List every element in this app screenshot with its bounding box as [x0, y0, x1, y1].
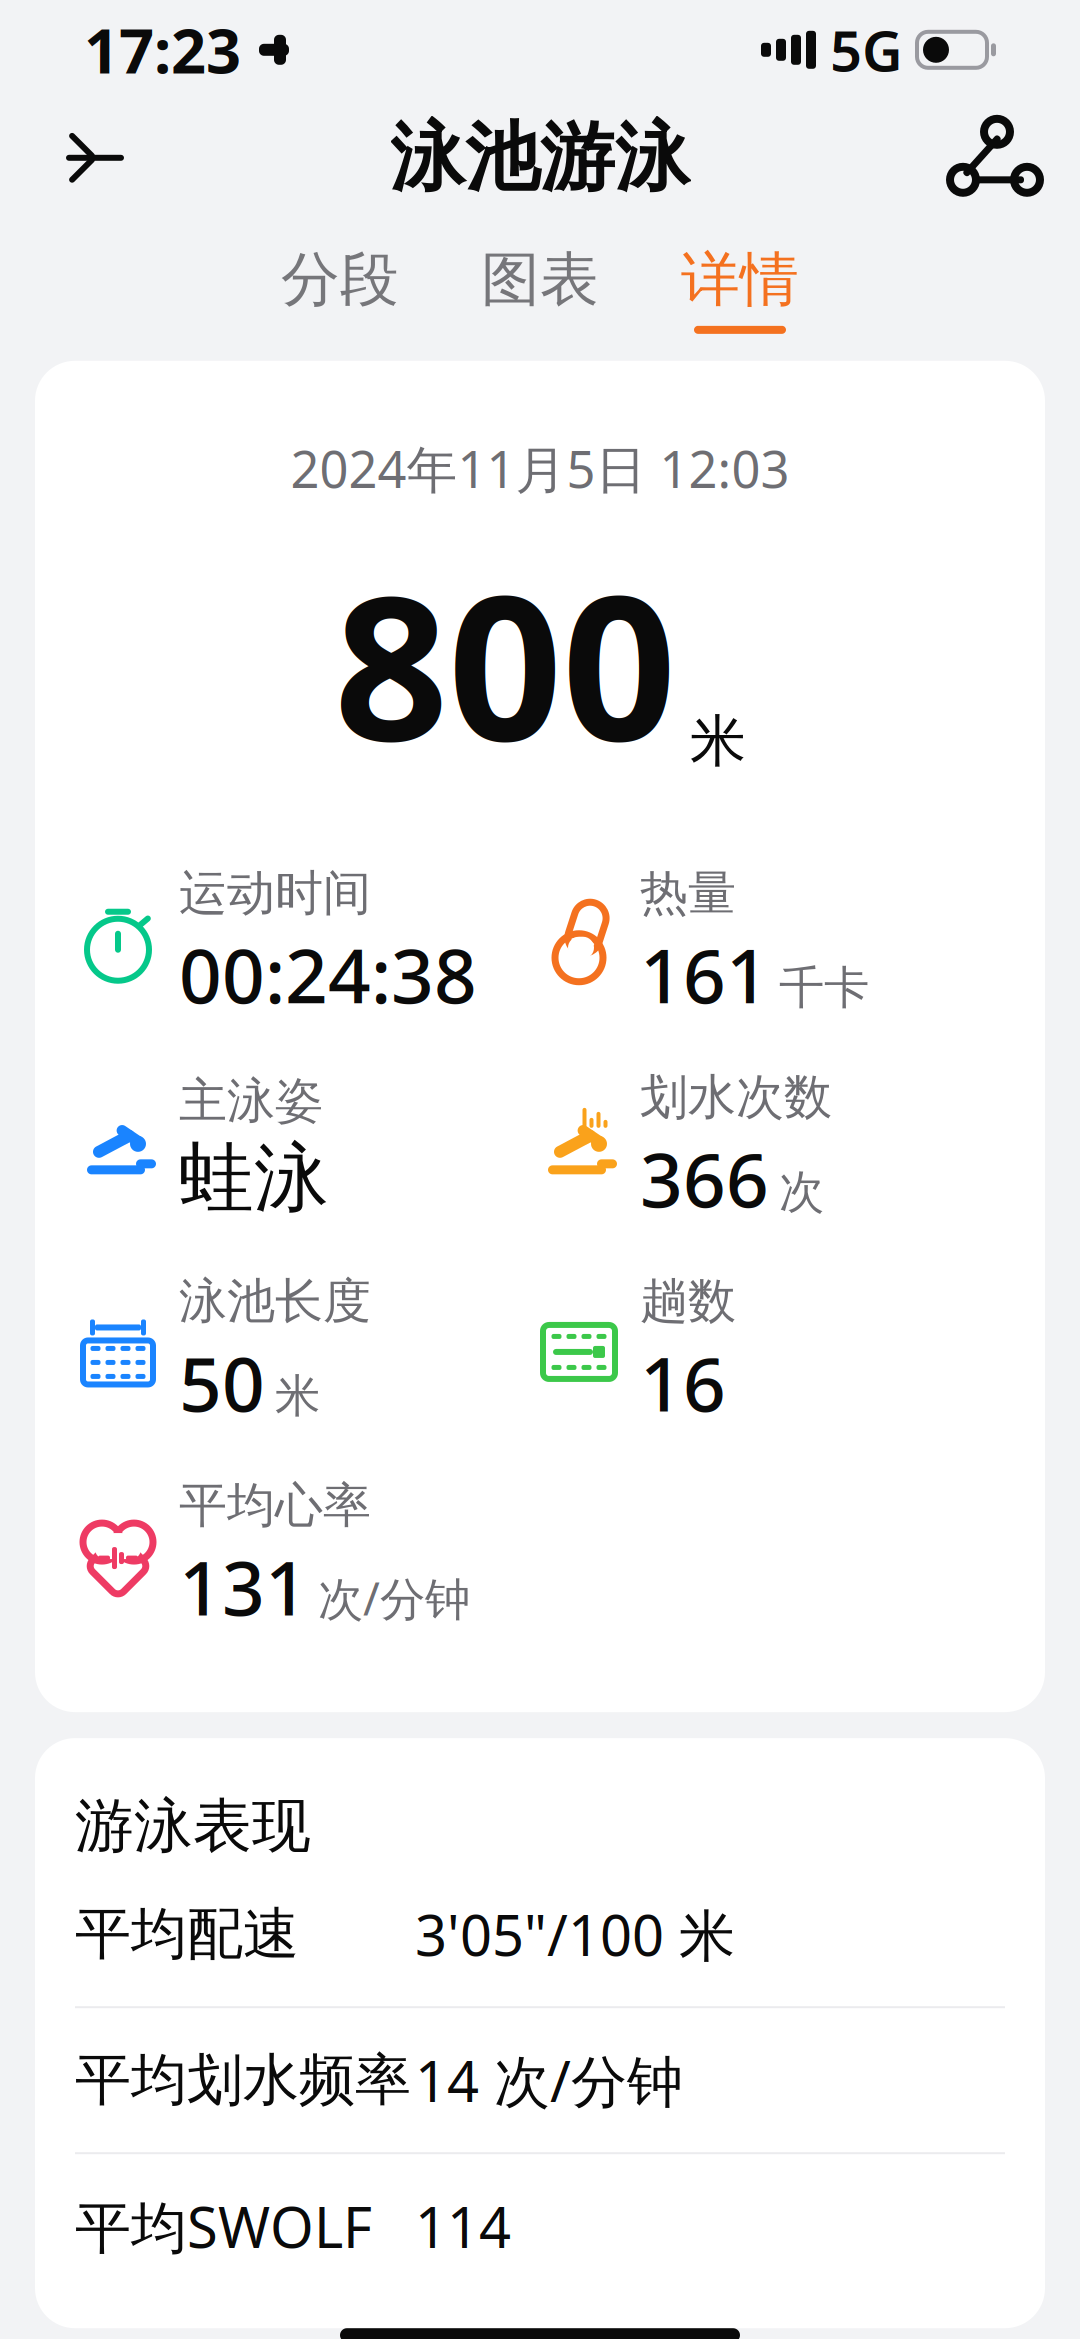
staticText: 16 [640, 1333, 726, 1432]
staticText: 泳池游泳 [390, 112, 690, 204]
staticText: 17:23 [84, 9, 241, 90]
staticText: 平均SWOLF [75, 2189, 372, 2263]
button[interactable]: 分段 [271, 238, 409, 340]
staticText: 次 [779, 1164, 824, 1220]
button[interactable]: 图表 [471, 238, 609, 340]
staticText: 趟数 [640, 1272, 736, 1331]
staticText: 00:24:38 [179, 925, 477, 1024]
staticText: 主泳姿 [179, 1071, 323, 1130]
staticText: 800 [334, 530, 676, 796]
staticText: 平均划水频率 [75, 2046, 411, 2115]
staticText: 蛙泳 [179, 1132, 329, 1224]
staticText: 千卡 [779, 960, 869, 1016]
button[interactable]: 详情 [671, 238, 809, 340]
staticText: 366 [640, 1129, 769, 1228]
staticText: 米 [690, 707, 746, 776]
staticText: 划水次数 [640, 1068, 832, 1127]
button[interactable]: 分享 [930, 103, 1040, 213]
staticText: 3'05"/100 米 [415, 1897, 735, 1971]
staticText: 米 [275, 1368, 320, 1424]
staticText: 161 [640, 925, 769, 1024]
staticText: 次/分钟 [318, 1568, 470, 1628]
staticText: 详情 [681, 244, 799, 316]
staticText: 2024年11月5日 12:03 [290, 435, 789, 502]
staticText: 114 [415, 2189, 511, 2263]
staticText: 游泳表现 [75, 1790, 311, 1862]
staticText: 平均配速 [75, 1900, 299, 1969]
staticText: 泳池长度 [179, 1272, 371, 1331]
button[interactable]: 返回 [40, 103, 150, 213]
staticText: 131 [179, 1537, 308, 1636]
staticText: 14 次/分钟 [415, 2043, 683, 2117]
staticText: 分段 [281, 244, 399, 316]
staticText: 50 [179, 1333, 265, 1432]
staticText: 5G [830, 13, 903, 87]
staticText: 平均心率 [179, 1476, 371, 1535]
staticText: 热量 [640, 864, 736, 923]
staticText: 图表 [481, 244, 599, 316]
staticText: 运动时间 [179, 864, 371, 923]
